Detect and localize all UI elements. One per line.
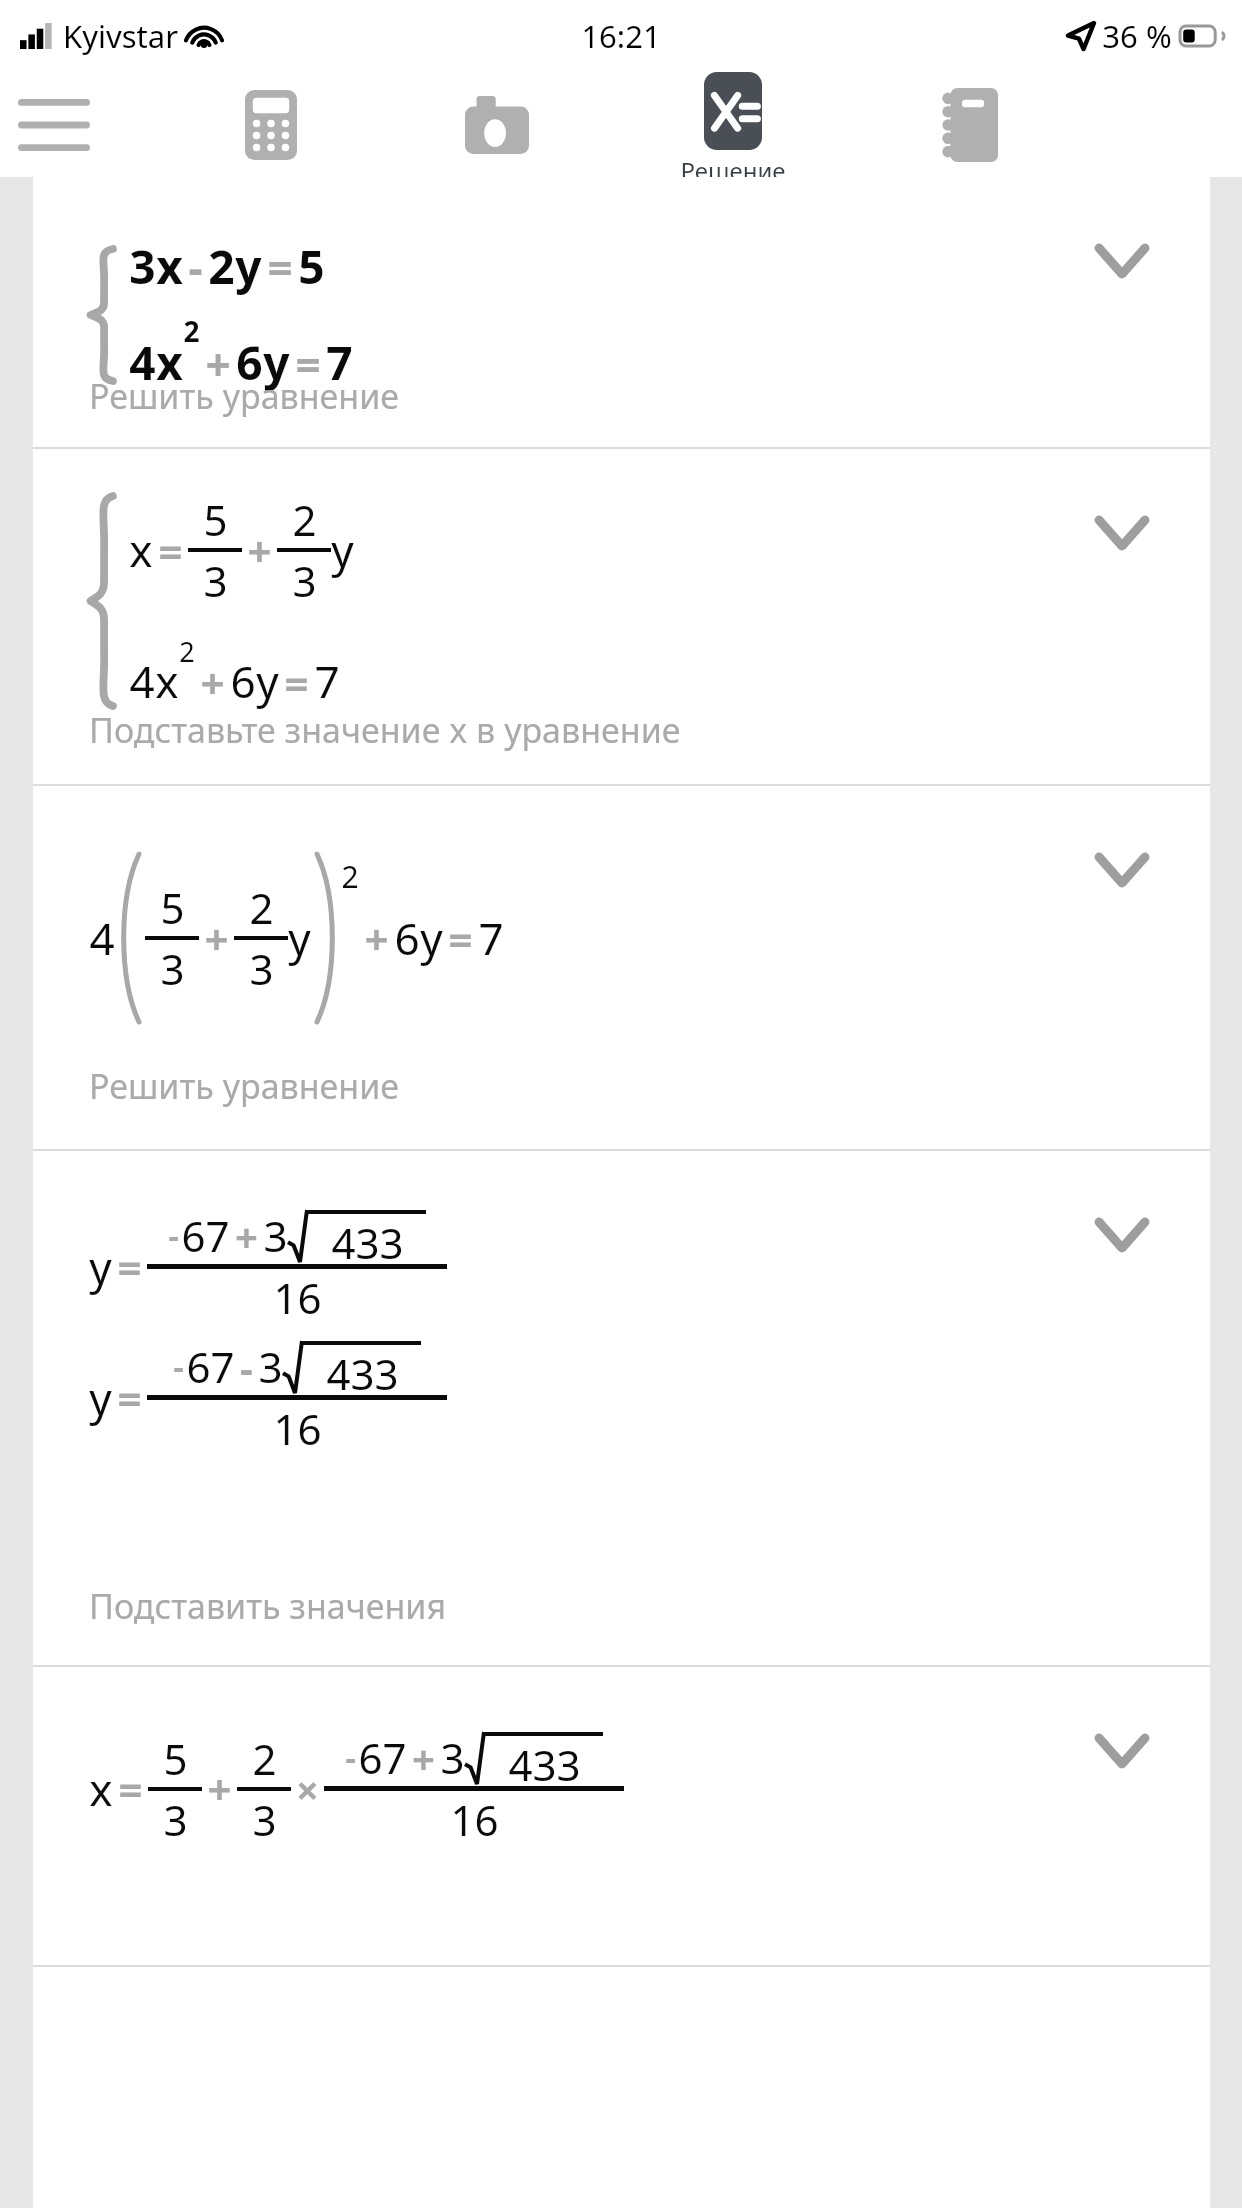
staticText: + [235,1209,258,1263]
staticText: 433 [326,1345,399,1393]
button[interactable]: Notebook [894,72,1044,177]
button[interactable]: Expand [1072,1185,1172,1285]
staticText: 2 [249,879,274,936]
staticText: - [173,1345,184,1389]
staticText: = [118,1760,143,1817]
staticText: x [156,331,183,394]
staticText: 2 [208,235,235,298]
button[interactable]: y [33,1151,1210,1667]
staticText: 3 [263,1207,288,1264]
staticText: y [420,908,443,968]
button[interactable]: Expand [1072,820,1172,920]
button[interactable]: 3 [33,177,1210,449]
staticText: 16:21 [581,15,661,57]
staticText: 3 [249,940,274,997]
staticText: x [155,651,179,711]
staticText: 7 [478,908,504,968]
staticText: 7 [314,651,340,711]
staticText: = [267,237,293,297]
staticText: 2 [252,1730,277,1787]
staticText: + [207,1760,232,1817]
staticText: = [117,1369,142,1426]
staticText: 16 [273,1400,322,1457]
staticText: y [89,1368,112,1428]
staticText: - [240,1340,253,1394]
staticText: 5 [160,879,185,936]
staticText: + [205,334,231,394]
staticText: 433 [508,1736,581,1784]
staticText: Kyivstar [63,15,178,57]
staticText: = [117,1238,142,1295]
staticText: 4 [129,651,155,711]
staticText: 3 [258,1338,283,1395]
button[interactable]: Expand [1072,211,1172,311]
staticText: 3 [440,1729,465,1786]
staticText: 5 [203,491,228,548]
staticText: 16 [450,1791,499,1848]
staticText: - [168,1214,179,1258]
staticText: x [156,235,183,298]
staticText: Подставьте значение x в уравнение [89,707,681,753]
staticText: 3 [163,1791,188,1848]
button[interactable]: Menu [12,83,96,167]
button[interactable]: Решение [648,72,818,177]
staticText: = [448,910,473,967]
staticText: = [284,654,309,711]
staticText: - [188,237,203,297]
staticText: 433 [331,1214,404,1262]
staticText: + [247,522,272,579]
staticText: 3 [160,940,185,997]
staticText: 3 [252,1791,277,1848]
staticText: + [200,654,225,711]
staticText: = [158,522,183,579]
staticText: x [89,1759,113,1819]
staticText: 3 [203,552,228,609]
staticText: 67 [358,1729,407,1786]
staticText: 67 [186,1338,235,1395]
staticText: y [263,331,290,394]
staticText: 3 [129,235,156,298]
staticText: Подставить значения [89,1583,447,1629]
staticText: 4 [89,908,115,968]
staticText: y [256,651,279,711]
staticText: 5 [163,1730,188,1787]
staticText: Решить уравнение [89,1063,400,1109]
staticText: 2 [292,491,317,548]
button[interactable]: Expand [1072,1701,1172,1801]
staticText: x [129,520,153,580]
staticText: 6 [230,651,256,711]
staticText: 36 % [1102,15,1172,57]
staticText: 2 [341,856,359,897]
button[interactable]: x [33,449,1210,786]
staticText: 6 [236,331,263,394]
staticText: 16 [273,1269,322,1326]
staticText: y [331,520,354,580]
button[interactable]: Calculator [196,72,346,177]
staticText: 5 [298,235,325,298]
staticText: + [364,910,389,967]
staticText: 6 [394,908,420,968]
staticText: = [295,334,321,394]
staticText: 2 [183,312,200,350]
staticText: Решение [680,154,786,177]
staticText: 7 [326,331,353,394]
button[interactable]: Camera [422,72,572,177]
staticText: 3 [292,552,317,609]
staticText: × [296,1762,319,1816]
button[interactable]: 4 [33,786,1210,1151]
staticText: Решить уравнение [89,373,400,419]
staticText: 67 [181,1207,230,1264]
staticText: - [345,1736,356,1780]
staticText: y [288,908,311,968]
staticText: + [412,1731,435,1785]
staticText: y [235,235,262,298]
button[interactable]: Expand [1072,483,1172,583]
staticText: 2 [179,633,195,670]
staticText: 4 [129,331,156,394]
staticText: y [89,1237,112,1297]
staticText: + [204,910,229,967]
button[interactable]: x [33,1667,1210,1967]
